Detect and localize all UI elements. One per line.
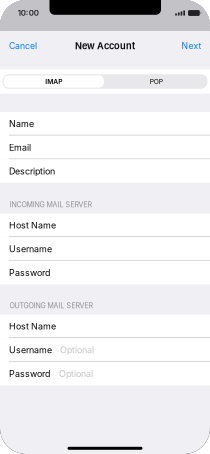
staticText: Password [9, 267, 50, 278]
button[interactable]: POP [105, 74, 207, 89]
staticText: Username [9, 345, 52, 355]
staticText: Optional [60, 345, 94, 355]
staticText: Email [9, 142, 31, 153]
button[interactable]: Next [175, 34, 210, 58]
staticText: New Account [75, 40, 135, 51]
staticText: 10:00 [18, 8, 39, 18]
button[interactable]: IMAP [3, 74, 105, 89]
button[interactable]: Password [0, 362, 210, 385]
button[interactable]: Email [0, 136, 210, 159]
staticText: Username [9, 244, 52, 254]
staticText: Cancel [9, 41, 37, 51]
button[interactable]: Cancel [0, 34, 43, 58]
button[interactable]: Host Name [0, 314, 210, 338]
button[interactable]: Username [0, 237, 210, 261]
staticText: Optional [59, 368, 93, 379]
staticText: Password [9, 368, 50, 379]
staticText: IMAP [45, 77, 62, 86]
staticText: POP [150, 77, 163, 86]
button[interactable]: Password [0, 261, 210, 284]
button[interactable]: Host Name [0, 213, 210, 237]
staticText: Description [9, 166, 55, 176]
button[interactable]: Description [0, 159, 210, 183]
staticText: Host Name [9, 321, 56, 332]
button[interactable]: Username [0, 338, 210, 362]
staticText: Next [181, 41, 201, 51]
staticText: Name [9, 118, 34, 129]
button[interactable]: Name [0, 112, 210, 136]
staticText: OUTGOING MAIL SERVER [10, 301, 94, 310]
staticText: INCOMING MAIL SERVER [10, 200, 93, 209]
staticText: Host Name [9, 220, 56, 231]
